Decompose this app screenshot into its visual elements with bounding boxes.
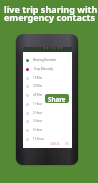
staticText: 45 Min	[33, 93, 43, 97]
staticText: 6 Hour	[33, 128, 43, 132]
button[interactable]: 45 Min	[23, 92, 72, 98]
button[interactable]: 2 Hour	[23, 110, 72, 116]
button[interactable]: 15 Min	[23, 75, 72, 81]
staticText: 30 Min	[33, 84, 43, 88]
staticText: Stop Manually	[34, 67, 54, 71]
button[interactable]: 6 Hour	[23, 127, 72, 133]
staticText: 2 Hour	[33, 111, 43, 115]
button[interactable]: Stop Manually	[23, 66, 72, 72]
staticText: 1 Hour	[33, 102, 43, 106]
staticText: Share	[48, 95, 66, 103]
staticText: 15 Min	[33, 76, 43, 80]
staticText: CANCEL	[50, 142, 60, 146]
staticText: 3 Hour	[33, 119, 43, 123]
button[interactable]: 30 Min	[23, 83, 72, 89]
button[interactable]: Share	[45, 94, 69, 103]
button[interactable]: 12 Hour	[23, 136, 72, 142]
button[interactable]: CANCEL	[49, 142, 61, 146]
button[interactable]: 1 Hour	[23, 101, 72, 107]
staticText: 12 Hour	[33, 137, 44, 141]
staticText: live trip sharing with emergency contact…	[4, 3, 98, 23]
button[interactable]: 3 Hour	[23, 118, 72, 124]
staticText: OK	[65, 142, 69, 146]
button[interactable]: OK	[64, 142, 70, 146]
staticText: Sharing Duration	[33, 58, 57, 62]
